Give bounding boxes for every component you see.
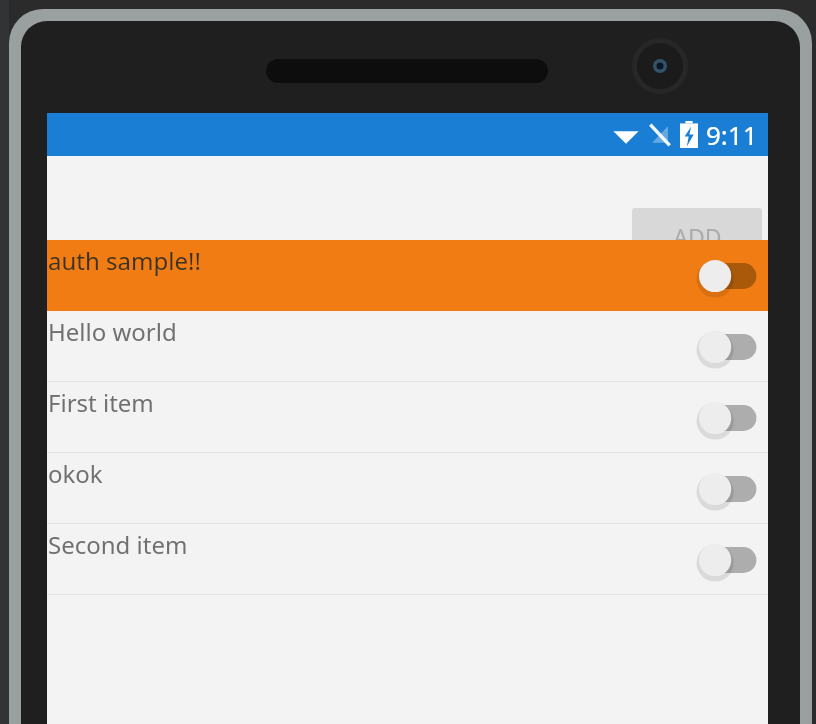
staticText: First item [48, 386, 154, 419]
staticText: okok [48, 457, 103, 490]
button[interactable]: ADD [632, 208, 762, 264]
button[interactable]: Toggle First item [692, 395, 762, 441]
button[interactable]: Hello world [47, 311, 768, 382]
button[interactable]: auth sample!! [47, 240, 768, 311]
button[interactable]: Toggle okok [692, 466, 762, 512]
button[interactable]: okok [47, 453, 768, 524]
staticText: Second item [48, 528, 188, 561]
staticText: auth sample!! [48, 244, 201, 277]
button[interactable]: Toggle auth sample!! [692, 253, 762, 299]
button[interactable]: Toggle Second item [692, 537, 762, 583]
button[interactable]: Toggle Hello world [692, 324, 762, 370]
button[interactable]: First item [47, 382, 768, 453]
button[interactable]: Second item [47, 524, 768, 595]
staticText: ADD [673, 221, 722, 252]
staticText: Hello world [48, 315, 177, 348]
staticText: 9:11 [706, 117, 758, 152]
